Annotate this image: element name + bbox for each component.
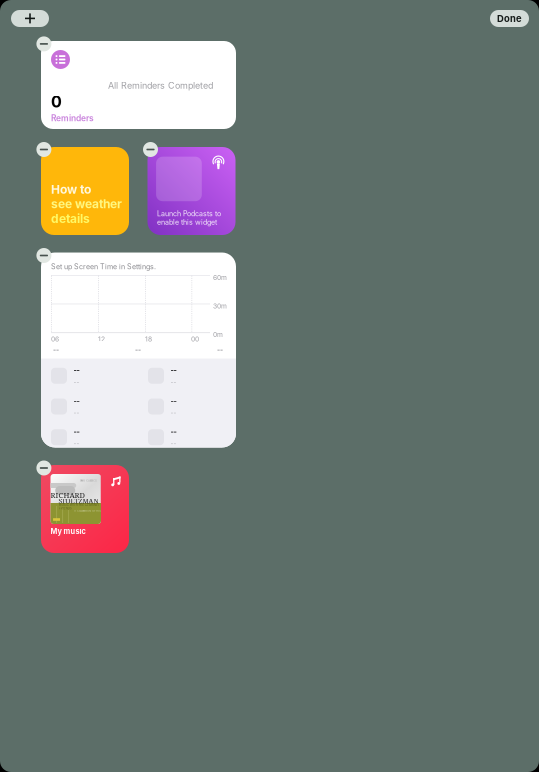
button[interactable]: Remove widget xyxy=(36,142,51,157)
staticText: 00 xyxy=(191,335,199,343)
staticText: -- xyxy=(170,378,176,385)
staticText: -- xyxy=(73,378,79,385)
staticText: Launch Podcasts to xyxy=(157,209,221,218)
staticText: How to xyxy=(51,182,91,196)
staticText: All Reminders Completed xyxy=(108,80,213,91)
button[interactable]: Remove widget xyxy=(36,248,51,263)
button[interactable]: Done xyxy=(490,10,529,27)
staticText: 30m xyxy=(213,302,227,310)
staticText: 0m xyxy=(213,330,223,339)
button[interactable]: Add widget xyxy=(11,10,49,27)
staticText: BMG CLASSICS xyxy=(80,479,96,482)
staticText: -- xyxy=(53,346,59,354)
staticText: -- xyxy=(73,409,79,416)
staticText: 12 xyxy=(98,335,105,343)
button[interactable]: All Reminders Completed xyxy=(41,41,236,129)
button[interactable]: How to xyxy=(41,147,129,235)
staticText: -- xyxy=(170,440,176,447)
staticText: Done xyxy=(497,13,522,24)
staticText: enable this widget xyxy=(157,218,217,226)
button[interactable]: Remove widget xyxy=(36,36,51,51)
staticText: see weather xyxy=(51,197,122,211)
button[interactable]: Remove widget xyxy=(143,142,158,157)
staticText: Set up Screen Time in Settings. xyxy=(51,262,156,271)
staticText: 60m xyxy=(213,273,227,282)
staticText: -- xyxy=(170,409,176,416)
button[interactable]: Launch Podcasts to xyxy=(147,147,235,235)
staticText: -- xyxy=(73,366,79,375)
staticText: -- xyxy=(170,397,176,405)
staticText: RICHARD xyxy=(50,490,84,500)
staticText: 06 xyxy=(51,335,59,343)
staticText: -- xyxy=(217,346,223,354)
staticText: -- xyxy=(73,440,79,447)
staticText: -- xyxy=(170,366,176,375)
staticText: 18 xyxy=(145,335,152,343)
button[interactable]: Set up Screen Time in Settings. xyxy=(41,252,236,447)
staticText: Reminders xyxy=(51,113,94,123)
staticText: -- xyxy=(73,427,79,436)
staticText: STOLTZMAN xyxy=(58,496,98,505)
staticText: -- xyxy=(73,397,79,405)
staticText: details xyxy=(51,211,90,226)
staticText: 0 xyxy=(51,92,62,111)
staticText: My music xyxy=(51,527,86,536)
button[interactable]: RICHARD xyxy=(41,465,129,553)
staticText: MUSIC WITH HIS CLARINET FRIENDS xyxy=(59,503,100,510)
button[interactable]: Remove widget xyxy=(36,460,51,475)
staticText: -- xyxy=(170,427,176,436)
staticText: -- xyxy=(135,346,141,354)
staticText: A CELEBRATION OF HIS PLAYING xyxy=(74,509,111,512)
